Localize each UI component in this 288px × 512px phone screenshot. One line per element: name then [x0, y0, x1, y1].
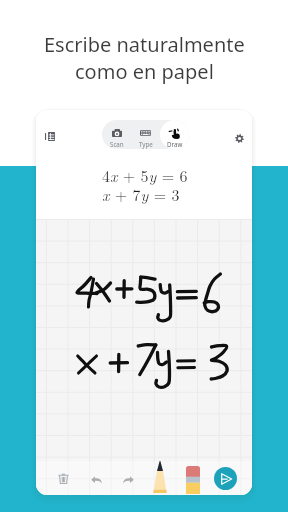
- button[interactable]: Send: [214, 467, 237, 490]
- button[interactable]: Pen: [153, 461, 167, 493]
- button[interactable]: Scan: [102, 120, 131, 149]
- staticText: Draw: [167, 140, 183, 148]
- staticText: 4x + 5y = 6: [102, 164, 188, 187]
- button[interactable]: Delete: [52, 467, 74, 489]
- button[interactable]: Notes: [39, 126, 60, 147]
- staticText: Scan: [110, 140, 124, 148]
- button[interactable]: Draw: [160, 120, 189, 149]
- button[interactable]: Redo: [117, 468, 139, 490]
- staticText: Type: [139, 140, 153, 148]
- staticText: x + 7y = 3: [102, 183, 180, 206]
- staticText: como en papel: [75, 58, 214, 85]
- staticText: Escribe naturalmente: [44, 31, 245, 58]
- button[interactable]: Type: [131, 120, 160, 149]
- button[interactable]: Undo: [85, 468, 107, 490]
- button[interactable]: Eraser: [186, 466, 200, 494]
- button[interactable]: Settings: [229, 128, 250, 149]
